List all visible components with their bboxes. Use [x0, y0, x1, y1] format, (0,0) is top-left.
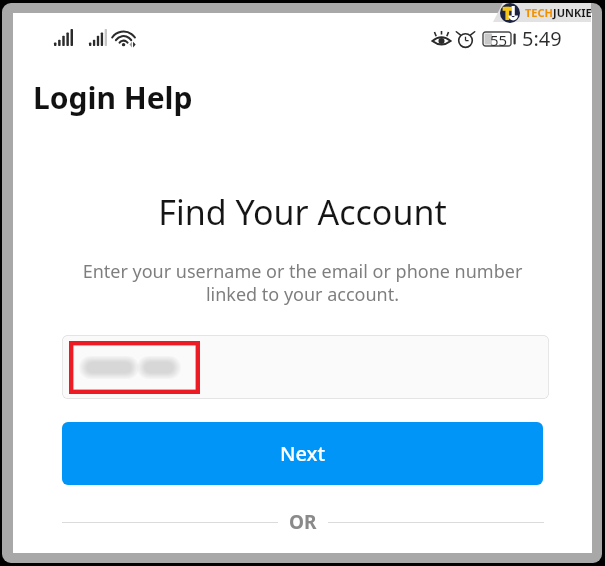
button[interactable]: Username, email or phone number	[62, 335, 549, 399]
staticText: 55	[490, 30, 508, 46]
staticText: 5:49	[522, 25, 562, 52]
staticText: Find Your Account	[13, 189, 592, 235]
staticText: Next	[280, 440, 326, 467]
staticText: Login Help	[33, 77, 193, 118]
button[interactable]: Next	[62, 422, 543, 485]
staticText: OR	[289, 509, 317, 535]
staticText: JUNKIE	[553, 5, 592, 20]
staticText: Enter your username or the email or phon…	[13, 259, 592, 306]
staticText: TECH	[525, 5, 553, 20]
